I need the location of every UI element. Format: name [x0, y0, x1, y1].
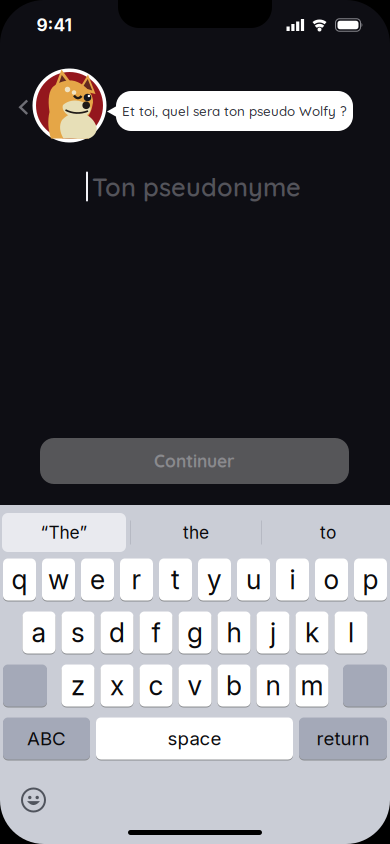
staticText: x	[110, 670, 124, 701]
staticText: “The”	[40, 522, 87, 543]
button[interactable]: n	[256, 664, 289, 707]
button[interactable]: t	[159, 558, 192, 601]
staticText: return	[316, 727, 369, 749]
button[interactable]: b	[217, 664, 250, 707]
button[interactable]: y	[198, 558, 231, 601]
button[interactable]: i	[276, 558, 309, 601]
staticText: v	[187, 670, 202, 701]
staticText: Et toi, quel sera ton pseudo Wolfy ?	[122, 103, 347, 119]
staticText: the	[183, 522, 209, 543]
button[interactable]: q	[3, 558, 36, 601]
button[interactable]: Ton pseudonyme	[88, 165, 390, 209]
staticText: r	[131, 564, 141, 595]
staticText: o	[323, 564, 339, 595]
staticText: to	[320, 522, 336, 543]
button[interactable]: k	[295, 611, 328, 654]
button[interactable]: Back	[11, 97, 35, 118]
button[interactable]: space	[96, 717, 293, 760]
button[interactable]: return	[299, 717, 387, 760]
button[interactable]: z	[61, 664, 94, 707]
button[interactable]: p	[354, 558, 387, 601]
button[interactable]: a	[22, 611, 55, 654]
staticText: m	[300, 670, 323, 701]
button[interactable]: Delete	[343, 664, 387, 707]
button[interactable]: v	[178, 664, 211, 707]
staticText: y	[207, 564, 222, 595]
staticText: Ton pseudonyme	[92, 171, 301, 203]
staticText: z	[71, 670, 85, 701]
staticText: a	[31, 617, 46, 648]
staticText: k	[305, 617, 319, 648]
button[interactable]: Continuer	[40, 438, 349, 484]
button[interactable]: u	[237, 558, 270, 601]
staticText: u	[246, 564, 261, 595]
staticText: w	[48, 564, 69, 595]
button[interactable]: d	[100, 611, 133, 654]
staticText: ABC	[27, 727, 66, 749]
button[interactable]: “The”	[2, 513, 126, 552]
staticText: g	[187, 617, 203, 648]
button[interactable]: m	[295, 664, 328, 707]
staticText: j	[270, 617, 276, 648]
button[interactable]: j	[256, 611, 289, 654]
button[interactable]: Shift	[3, 664, 47, 707]
staticText: f	[151, 617, 160, 648]
button[interactable]: g	[178, 611, 211, 654]
button[interactable]: r	[120, 558, 153, 601]
button[interactable]: o	[315, 558, 348, 601]
staticText: s	[71, 617, 85, 648]
staticText: e	[90, 564, 105, 595]
staticText: c	[148, 670, 163, 701]
button[interactable]: w	[42, 558, 75, 601]
button[interactable]: e	[81, 558, 114, 601]
button[interactable]: ABC	[3, 717, 90, 760]
staticText: Continuer	[154, 450, 235, 472]
button[interactable]: s	[61, 611, 94, 654]
button[interactable]: Emoji	[22, 788, 45, 811]
staticText: space	[167, 727, 221, 749]
button[interactable]: f	[139, 611, 172, 654]
staticText: t	[171, 564, 180, 595]
button[interactable]: the	[136, 513, 256, 552]
staticText: 9:41	[36, 15, 71, 35]
staticText: b	[226, 670, 242, 701]
staticText: i	[289, 564, 295, 595]
button[interactable]: h	[217, 611, 250, 654]
button[interactable]: l	[334, 611, 367, 654]
staticText: h	[226, 617, 241, 648]
button[interactable]: x	[100, 664, 133, 707]
staticText: l	[348, 617, 354, 648]
staticText: n	[265, 670, 280, 701]
staticText: q	[11, 564, 27, 595]
button[interactable]: to	[268, 513, 388, 552]
staticText: p	[362, 564, 378, 595]
button[interactable]: c	[139, 664, 172, 707]
staticText: d	[109, 617, 125, 648]
